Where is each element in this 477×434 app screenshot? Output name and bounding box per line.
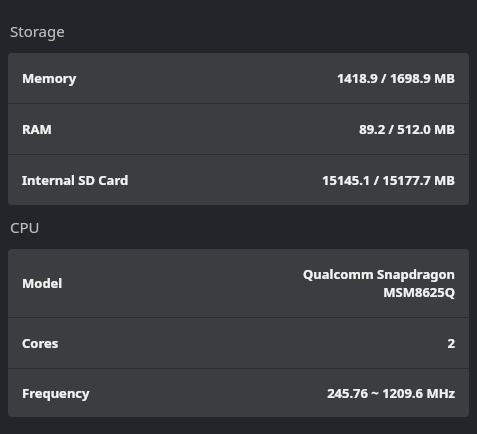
staticText: Model [22,274,63,292]
button[interactable]: Memory [8,53,469,103]
button[interactable]: Model [8,249,469,317]
staticText: 1418.9 / 1698.9 MB [336,69,455,87]
staticText: 89.2 / 512.0 MB [359,120,455,138]
staticText: CPU [10,217,40,237]
staticText: Internal SD Card [22,171,129,189]
button[interactable]: Cores [8,318,469,368]
staticText: Qualcomm Snapdragon MSM8625Q [303,265,455,301]
staticText: RAM [22,120,52,138]
button[interactable]: RAM [8,104,469,154]
staticText: 245.76 ~ 1209.6 MHz [327,384,455,402]
staticText: Storage [10,21,65,41]
staticText: 15145.1 / 15177.7 MB [322,171,455,189]
staticText: Memory [22,69,77,87]
button[interactable]: Internal SD Card [8,155,469,205]
staticText: 2 [447,334,455,352]
button[interactable]: Frequency [8,369,469,417]
staticText: Frequency [22,384,90,402]
staticText: Cores [22,334,59,352]
